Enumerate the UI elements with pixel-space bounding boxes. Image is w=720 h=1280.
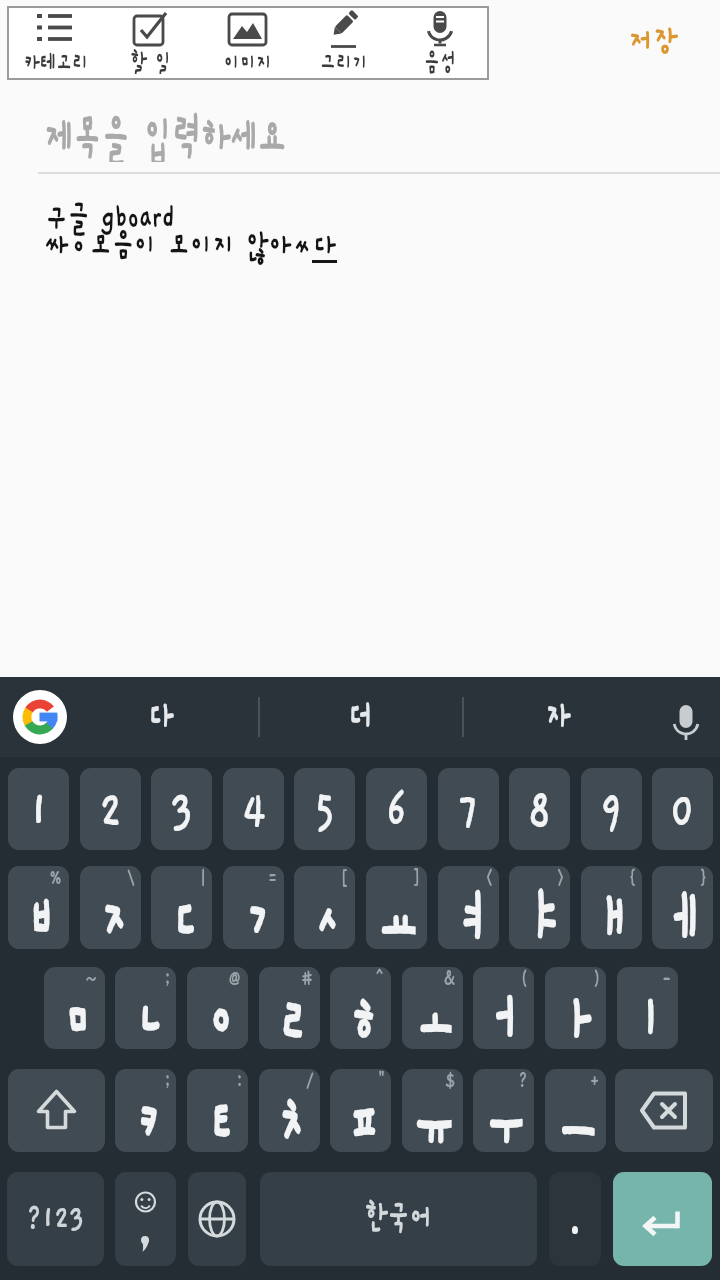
button[interactable]: ㅛ (366, 866, 427, 949)
button[interactable]: ㅗ (402, 967, 463, 1049)
button[interactable]: 1 (8, 768, 69, 850)
button[interactable] (613, 1172, 712, 1266)
button[interactable] (660, 698, 712, 750)
button[interactable]: ㅣ (617, 967, 678, 1049)
staticText: ?123 (26, 1201, 85, 1237)
staticText: ㅅ (305, 876, 344, 949)
staticText: . (567, 1191, 583, 1247)
button[interactable]: ㅐ (581, 866, 642, 949)
button[interactable]: . (549, 1172, 601, 1266)
button[interactable]: ㅏ (545, 967, 606, 1049)
button[interactable]: ㅔ (652, 866, 713, 949)
staticText: 5 (314, 783, 336, 839)
staticText: ㄴ (126, 977, 165, 1049)
button[interactable] (188, 1172, 246, 1266)
staticText: ) (592, 967, 600, 991)
button[interactable]: 5 (294, 768, 355, 850)
staticText: 4 (241, 783, 266, 839)
button[interactable]: 이미지 (200, 10, 296, 78)
button[interactable]: 3 (151, 768, 212, 850)
button[interactable]: 할 일 (103, 10, 199, 78)
button[interactable]: 8 (509, 768, 570, 850)
staticText: < (485, 866, 493, 890)
staticText: 이미지 (224, 48, 272, 74)
button[interactable]: ㅋ (115, 1069, 176, 1152)
button[interactable]: ㅍ (330, 1069, 391, 1152)
staticText: ㄷ (162, 876, 201, 949)
staticText: 자 (545, 692, 570, 742)
button[interactable]: ㅜ (473, 1069, 534, 1152)
staticText: > (556, 866, 564, 890)
button[interactable]: ㅑ (509, 866, 570, 949)
staticText: 할 일 (130, 48, 171, 74)
staticText: 9 (600, 783, 623, 839)
button[interactable]: ㅕ (438, 866, 499, 949)
staticText: 2 (99, 783, 123, 839)
staticText: 저장 (628, 24, 678, 60)
button[interactable]: ㄷ (151, 866, 212, 949)
staticText: 다 (148, 692, 173, 742)
staticText: ㅛ (377, 876, 416, 949)
button[interactable]: ㅓ (473, 967, 534, 1049)
staticText: ( (520, 967, 528, 991)
button[interactable]: ?123 (7, 1172, 104, 1266)
button[interactable]: 9 (581, 768, 642, 850)
button[interactable]: 저장 (617, 14, 689, 70)
staticText: 3 (170, 783, 194, 839)
button[interactable] (8, 1069, 105, 1152)
button[interactable]: 한국어 (260, 1172, 537, 1266)
button[interactable]: ㄱ (223, 866, 284, 949)
staticText: - (661, 967, 672, 991)
button[interactable]: ㅇ (187, 967, 248, 1049)
staticText: 카테고리 (23, 48, 87, 74)
staticText: ㅜ (484, 1079, 523, 1152)
staticText: ? (518, 1069, 528, 1093)
button[interactable]: ㅎ (330, 967, 391, 1049)
staticText: 더 (348, 692, 373, 742)
button[interactable]: 자 (507, 691, 607, 743)
button[interactable]: 카테고리 (7, 10, 103, 78)
button[interactable]: 0 (652, 768, 713, 850)
button[interactable]: ㅌ (187, 1069, 248, 1152)
staticText: ~ (84, 967, 98, 991)
staticText: ㅇ (198, 977, 237, 1049)
staticText: ; (164, 1069, 171, 1093)
staticText: : (236, 1069, 243, 1093)
button[interactable]: ㅡ (545, 1069, 606, 1152)
staticText: 6 (386, 783, 407, 839)
button[interactable]: 음성 (392, 10, 488, 78)
staticText: ^ (374, 967, 385, 991)
button[interactable]: 2 (80, 768, 141, 850)
button[interactable]: 더 (310, 691, 410, 743)
staticText: | (199, 866, 207, 890)
staticText: ㅏ (556, 977, 595, 1049)
button[interactable] (615, 1069, 713, 1152)
staticText: ㅈ (91, 876, 130, 949)
button[interactable]: 그리기 (296, 10, 392, 78)
staticText: ㅗ (413, 977, 452, 1049)
button[interactable]: 7 (438, 768, 499, 850)
button[interactable]: 4 (223, 768, 284, 850)
button[interactable]: ㅈ (80, 866, 141, 949)
staticText: 제목을 입력하세요 (45, 112, 286, 162)
button[interactable]: ㄴ (115, 967, 176, 1049)
button[interactable]: ㅁ (44, 967, 105, 1049)
button[interactable]: ㅊ (259, 1069, 320, 1152)
button[interactable]: ㅂ (8, 866, 69, 949)
button[interactable]: ㅅ (294, 866, 355, 949)
staticText: ㅔ (663, 876, 702, 949)
staticText: 한국어 (365, 1199, 432, 1239)
button[interactable]: 다 (110, 691, 210, 743)
button[interactable]: ㅠ (402, 1069, 463, 1152)
staticText: 구글 gboard (45, 198, 175, 236)
staticText: ㅍ (341, 1079, 380, 1152)
button[interactable]: 6 (366, 768, 427, 850)
staticText: 1 (30, 783, 48, 839)
button[interactable]: ㄹ (259, 967, 320, 1049)
staticText: ㅡ (556, 1079, 595, 1152)
staticText: ㅁ (55, 977, 94, 1049)
staticText: " (377, 1069, 385, 1093)
staticText: ㅊ (270, 1079, 309, 1152)
button[interactable] (115, 1172, 176, 1266)
button[interactable] (13, 690, 67, 744)
